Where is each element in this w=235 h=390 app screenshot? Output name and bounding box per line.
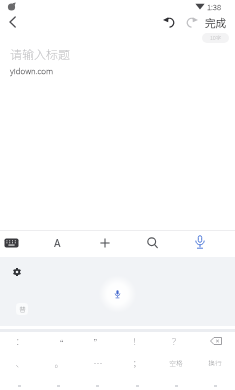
button[interactable]: … (79, 352, 117, 374)
button[interactable]: 。 (40, 352, 78, 374)
button[interactable] (106, 283, 129, 306)
staticText: 完成 (205, 15, 226, 30)
staticText: 空格 (169, 358, 183, 368)
staticText: 。 (54, 357, 64, 370)
staticText: ； (132, 357, 142, 370)
button[interactable] (196, 330, 234, 352)
button[interactable] (9, 264, 25, 280)
button[interactable]: “ (40, 332, 78, 354)
button[interactable] (159, 13, 179, 30)
button[interactable]: 普 (16, 303, 28, 315)
button[interactable]: 空格 (157, 352, 195, 374)
button[interactable]: ： (1, 330, 39, 352)
staticText: 1:38 (207, 1, 221, 12)
staticText: ？ (171, 335, 181, 348)
button[interactable]: ？ (157, 330, 195, 352)
button[interactable]: 换行 (196, 352, 234, 374)
button[interactable]: 完成 (199, 13, 231, 31)
staticText: yidown.com (10, 65, 54, 77)
button[interactable]: ” (79, 332, 117, 354)
staticText: 10字 (210, 34, 222, 42)
button[interactable] (94, 233, 115, 253)
button[interactable]: ； (118, 352, 156, 374)
button[interactable] (142, 233, 163, 253)
staticText: ： (15, 335, 25, 348)
staticText: “ (54, 337, 64, 350)
staticText: ” (93, 337, 103, 350)
button[interactable] (1, 233, 22, 253)
button[interactable] (182, 13, 202, 30)
staticText: 请输入标题 (10, 45, 71, 62)
staticText: 、 (15, 357, 25, 370)
button[interactable]: ！ (118, 330, 156, 352)
staticText: … (93, 357, 103, 370)
button[interactable]: A (47, 233, 68, 253)
button[interactable] (189, 232, 211, 253)
staticText: 普 (19, 304, 26, 314)
button[interactable] (4, 13, 24, 31)
staticText: A (54, 236, 61, 250)
staticText: ！ (132, 335, 142, 348)
staticText: 换行 (208, 358, 222, 368)
